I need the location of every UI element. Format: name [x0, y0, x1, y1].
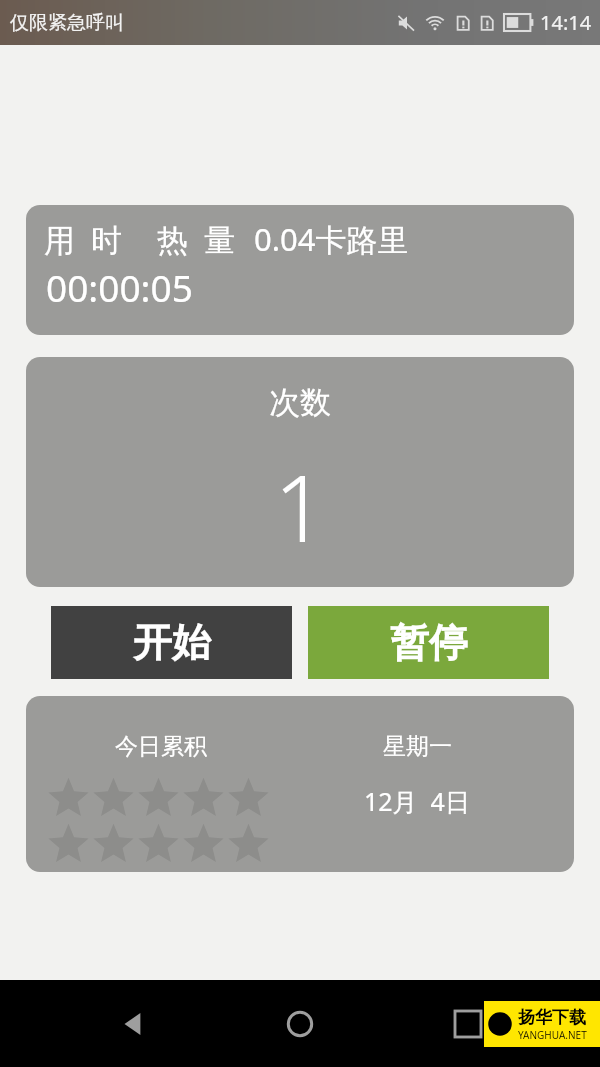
staticText: 热 量	[157, 218, 236, 260]
staticText: 星期一	[383, 732, 452, 761]
staticText: 12月 4日	[364, 784, 470, 818]
button[interactable]: 今日累积	[26, 696, 574, 872]
staticText: 用 时	[44, 218, 123, 260]
staticText: 开始	[133, 618, 211, 667]
staticText: 次数	[269, 383, 331, 422]
staticText: 1	[274, 444, 327, 569]
staticText: 仅限紧急呼叫	[10, 11, 124, 35]
staticText: 00:00:05	[46, 262, 193, 312]
button[interactable]: 次数	[26, 357, 574, 587]
staticText: 14:14	[540, 9, 592, 36]
staticText: YANGHUA.NET	[518, 1028, 587, 1042]
staticText: 0.04卡路里	[254, 218, 409, 260]
button[interactable]: 用 时	[26, 205, 574, 335]
button[interactable]: 暂停	[308, 606, 549, 679]
button[interactable]: 开始	[51, 606, 292, 679]
button[interactable]: Home	[264, 988, 336, 1060]
staticText: 暂停	[390, 618, 468, 667]
button[interactable]: Recents	[432, 988, 504, 1060]
staticText: 今日累积	[115, 732, 207, 761]
button[interactable]: Back	[96, 988, 168, 1060]
staticText: 扬华下载	[518, 1007, 586, 1028]
